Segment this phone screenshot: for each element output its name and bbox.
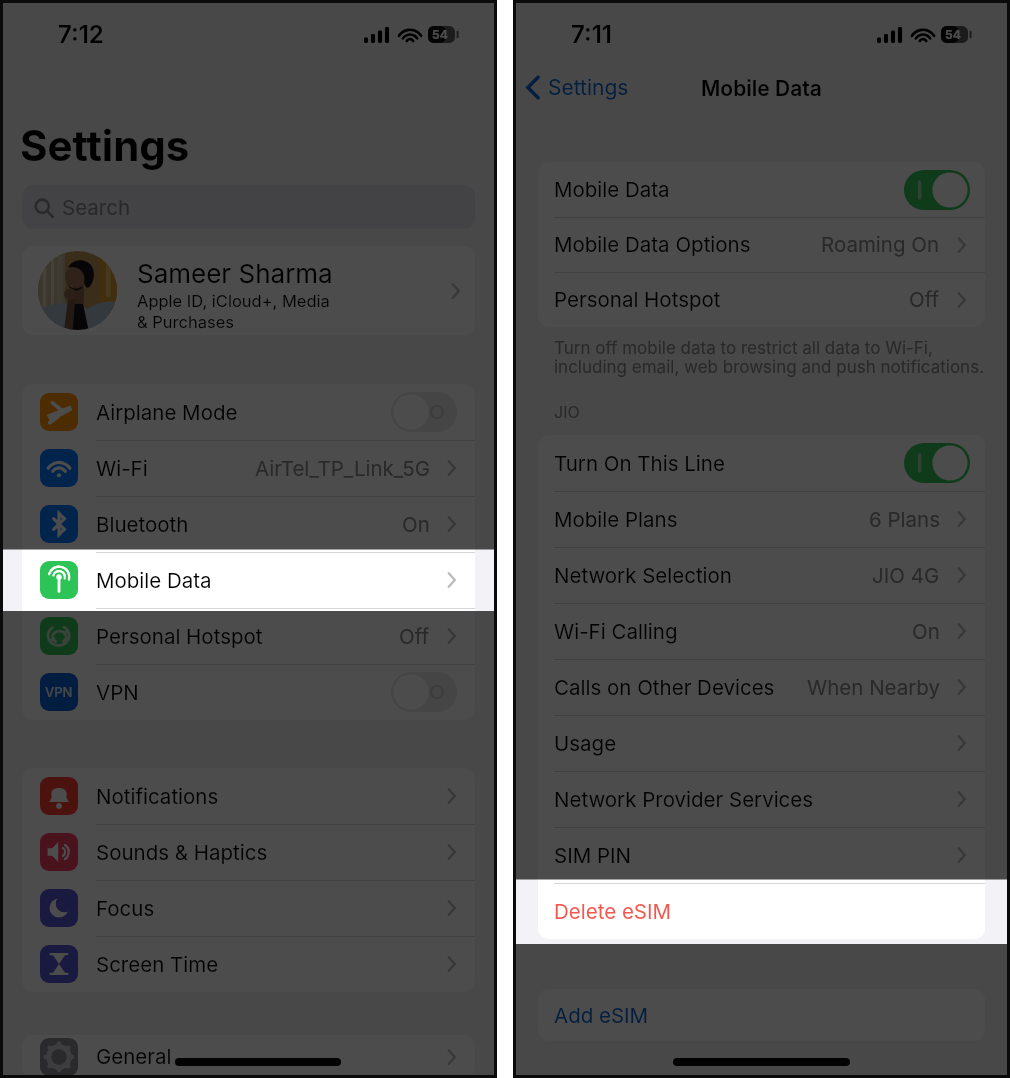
- staticText: Mobile Data: [701, 76, 822, 101]
- button[interactable]: Bluetooth: [22, 496, 475, 552]
- button[interactable]: VPN: [22, 664, 475, 720]
- staticText: 6 Plans: [869, 507, 940, 532]
- button[interactable]: Wi-Fi: [22, 440, 475, 496]
- button[interactable]: Sameer Sharma: [22, 246, 475, 335]
- button[interactable]: Airplane Mode: [22, 384, 475, 440]
- button[interactable]: Usage: [538, 715, 985, 771]
- staticText: VPN: [96, 680, 139, 705]
- button[interactable]: Network Provider Services: [538, 771, 985, 827]
- button[interactable]: Add eSIM: [538, 989, 985, 1041]
- staticText: Off: [909, 287, 940, 312]
- other: Battery 54 percent: [941, 26, 971, 43]
- button[interactable]: Delete eSIM: [538, 883, 985, 939]
- staticText: Network Selection: [554, 563, 732, 588]
- button[interactable]: Mobile Data: [22, 552, 475, 608]
- staticText: Mobile Plans: [554, 507, 678, 532]
- staticText: JIO: [554, 402, 580, 421]
- button[interactable]: Mobile Data: [538, 162, 985, 217]
- staticText: General: [96, 1044, 172, 1069]
- staticText: 54: [945, 27, 961, 42]
- button[interactable]: Screen Time: [22, 936, 475, 992]
- staticText: Mobile Data: [96, 568, 212, 593]
- button[interactable]: Turn On This Line: [538, 435, 985, 491]
- staticText: Calls on Other Devices: [554, 675, 775, 700]
- staticText: 7:12: [58, 20, 104, 49]
- staticText: Off: [399, 624, 430, 649]
- staticText: Turn off mobile data to restrict all dat…: [554, 338, 985, 377]
- staticText: Usage: [554, 731, 617, 756]
- staticText: Sounds & Haptics: [96, 840, 268, 865]
- button[interactable]: SIM PIN: [538, 827, 985, 883]
- button[interactable]: General: [22, 1035, 475, 1078]
- staticText: SIM PIN: [554, 843, 631, 868]
- button[interactable]: Calls on Other Devices: [538, 659, 985, 715]
- staticText: Search: [62, 195, 131, 220]
- staticText: Apple ID, iCloud+, Media & Purchases: [137, 291, 330, 332]
- staticText: Wi-Fi Calling: [554, 619, 678, 644]
- staticText: 54: [432, 27, 448, 42]
- staticText: Airplane Mode: [96, 400, 238, 425]
- staticText: Network Provider Services: [554, 787, 814, 812]
- button[interactable]: Wi-Fi Calling: [538, 603, 985, 659]
- button[interactable]: Mobile Plans: [538, 491, 985, 547]
- button[interactable]: Notifications: [22, 768, 475, 824]
- staticText: On: [402, 512, 430, 537]
- button[interactable]: Personal Hotspot: [22, 608, 475, 664]
- other: Wi-Fi: [398, 27, 422, 43]
- button[interactable]: Sounds & Haptics: [22, 824, 475, 880]
- staticText: Roaming On: [821, 232, 940, 257]
- staticText: Focus: [96, 896, 155, 921]
- staticText: Notifications: [96, 784, 219, 809]
- button[interactable]: Focus: [22, 880, 475, 936]
- staticText: Bluetooth: [96, 512, 189, 537]
- staticText: On: [912, 619, 940, 644]
- staticText: 7:11: [571, 20, 612, 49]
- button[interactable]: Network Selection: [538, 547, 985, 603]
- staticText: When Nearby: [807, 675, 940, 700]
- staticText: Mobile Data Options: [554, 232, 751, 257]
- staticText: Screen Time: [96, 952, 219, 977]
- other: Wi-Fi: [911, 27, 935, 43]
- staticText: Delete eSIM: [554, 899, 672, 924]
- staticText: Personal Hotspot: [554, 287, 721, 312]
- staticText: Sameer Sharma: [137, 258, 333, 289]
- staticText: Personal Hotspot: [96, 624, 263, 649]
- staticText: Wi-Fi: [96, 456, 148, 481]
- staticText: Add eSIM: [554, 1003, 649, 1028]
- staticText: Settings: [20, 120, 190, 171]
- button[interactable]: Search: [22, 185, 475, 229]
- staticText: JIO 4G: [872, 563, 940, 588]
- button[interactable]: Settings: [513, 74, 639, 101]
- staticText: AirTel_TP_Link_5G: [255, 456, 430, 481]
- staticText: Mobile Data: [554, 177, 670, 202]
- other: Signal strength: [364, 27, 390, 43]
- staticText: Settings: [548, 75, 629, 100]
- staticText: VPN: [45, 684, 73, 700]
- staticText: Turn On This Line: [554, 451, 725, 476]
- button[interactable]: Personal Hotspot: [538, 272, 985, 327]
- button[interactable]: Mobile Data Options: [538, 217, 985, 272]
- other: Battery 54 percent: [428, 26, 458, 43]
- other: Signal strength: [877, 27, 903, 43]
